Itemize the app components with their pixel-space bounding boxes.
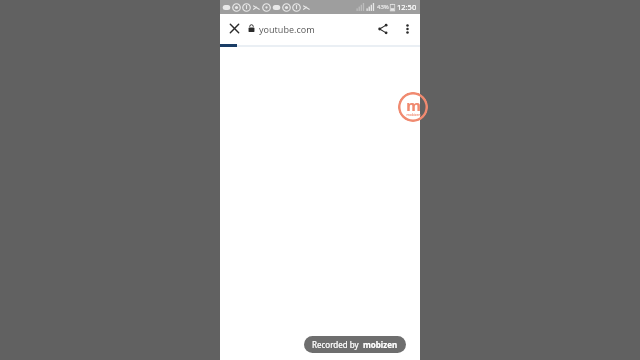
button[interactable]: More options bbox=[396, 14, 418, 43]
staticText: m bbox=[406, 95, 421, 115]
staticText: Recorded by bbox=[312, 339, 359, 350]
button[interactable]: youtube.com bbox=[248, 14, 370, 43]
staticText: youtube.com bbox=[259, 23, 315, 35]
button[interactable]: Share bbox=[370, 14, 396, 43]
button[interactable]: Close bbox=[220, 14, 248, 43]
staticText: 12:50 bbox=[397, 2, 417, 12]
staticText: 43% bbox=[377, 3, 389, 11]
staticText: mobizen bbox=[406, 112, 421, 117]
staticText: mobizen bbox=[363, 339, 398, 350]
